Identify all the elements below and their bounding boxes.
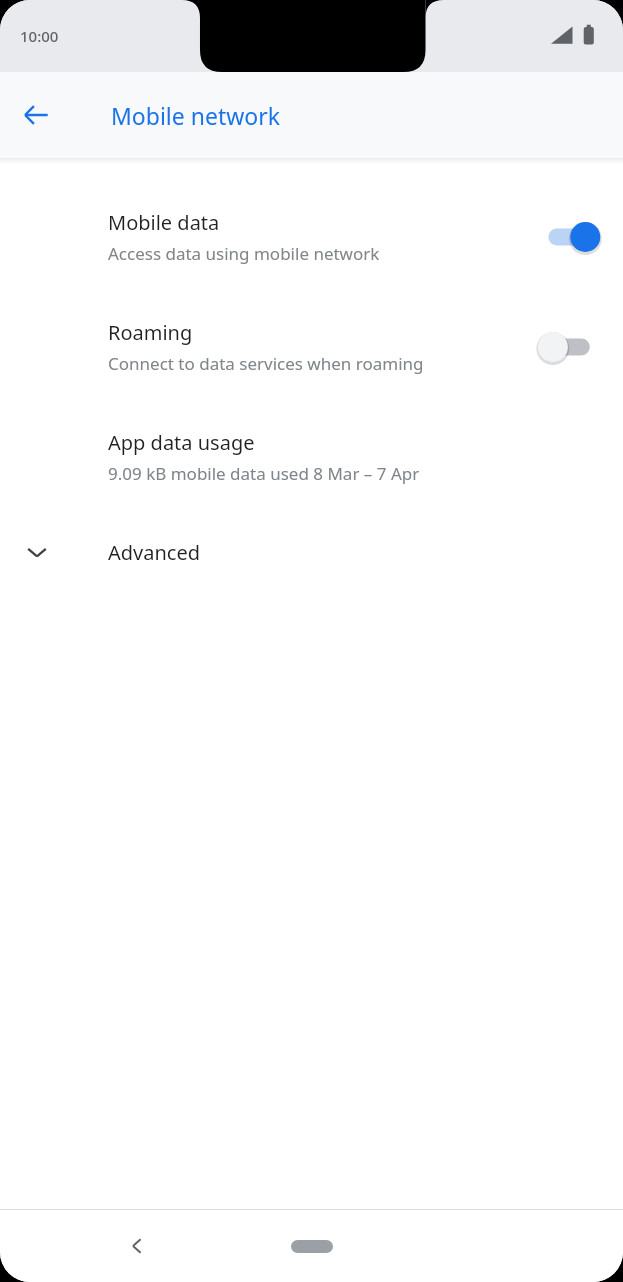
staticText: 10:00 (20, 26, 59, 46)
button[interactable]: Home (280, 1228, 344, 1264)
button[interactable]: Advanced (0, 512, 623, 592)
staticText: Mobile data (108, 209, 220, 236)
staticText: Connect to data services when roaming (108, 352, 424, 375)
staticText: Mobile network (111, 100, 281, 131)
button[interactable]: Toggle off (545, 327, 601, 367)
staticText: 9.09 kB mobile data used 8 Mar – 7 Apr (108, 462, 420, 485)
staticText: Advanced (108, 539, 200, 566)
staticText: Access data using mobile network (108, 242, 380, 265)
button[interactable]: Toggle on (545, 217, 601, 257)
button[interactable]: Back (113, 1222, 161, 1270)
button[interactable]: Mobile data (0, 182, 623, 292)
staticText: App data usage (108, 429, 255, 456)
button[interactable]: App data usage (0, 402, 623, 512)
staticText: Roaming (108, 319, 193, 346)
button[interactable]: Back (12, 91, 60, 139)
button[interactable]: Roaming (0, 292, 623, 402)
